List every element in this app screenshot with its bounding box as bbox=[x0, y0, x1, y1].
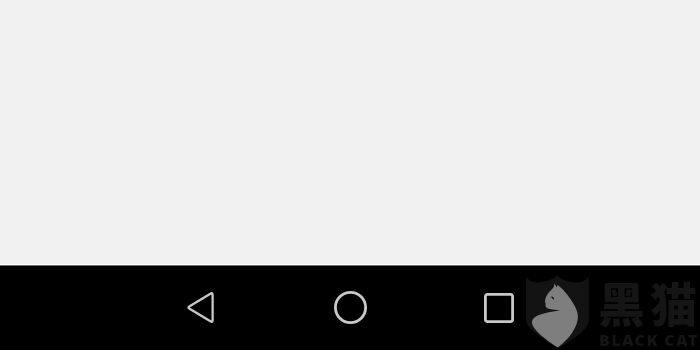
button[interactable]: Home bbox=[326, 283, 374, 331]
staticText: 黑猫 bbox=[598, 267, 700, 335]
button[interactable]: Back bbox=[176, 283, 224, 331]
staticText: BLACK CAT bbox=[599, 329, 699, 350]
button[interactable]: Recent apps bbox=[475, 284, 523, 332]
